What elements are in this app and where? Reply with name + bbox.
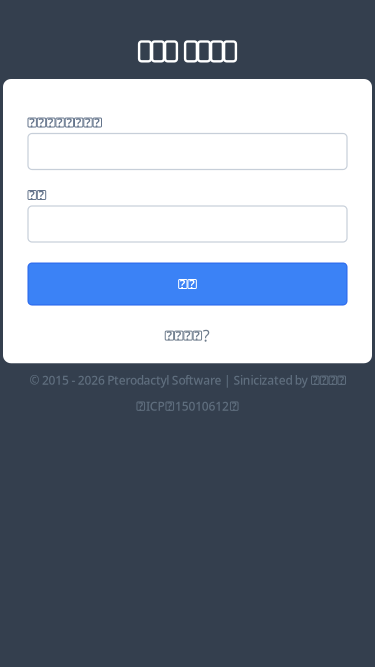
staticText: ?	[330, 373, 335, 387]
staticText: ?	[339, 373, 344, 387]
staticText: ?	[176, 328, 182, 344]
button[interactable]: ?	[28, 305, 347, 363]
staticText: ?	[313, 373, 318, 387]
staticText: ?	[322, 373, 327, 387]
staticText: ?	[76, 114, 82, 130]
staticText: 15010612	[175, 398, 229, 414]
staticText: ?	[66, 114, 72, 130]
staticText: ?	[189, 276, 195, 292]
staticText: ?	[185, 328, 191, 344]
staticText: ?	[29, 187, 35, 203]
staticText: ?	[180, 276, 186, 292]
button[interactable]: ?	[28, 263, 347, 305]
staticText: ?	[138, 399, 143, 413]
staticText: ?	[232, 399, 237, 413]
staticText: ?	[38, 114, 44, 130]
staticText: ?	[38, 187, 44, 203]
staticText: ?	[85, 114, 91, 130]
staticText: © 2015 - 2026 Pterodactyl Software | Sin…	[29, 372, 307, 388]
staticText: ?	[94, 114, 100, 130]
staticText: ?	[166, 328, 172, 344]
staticText: ?	[57, 114, 63, 130]
staticText: ?	[48, 114, 54, 130]
staticText: ?	[29, 114, 35, 130]
staticText: ?	[203, 325, 210, 346]
staticText: ?	[167, 399, 172, 413]
staticText: ?	[194, 328, 200, 344]
staticText: ICP	[146, 398, 164, 414]
